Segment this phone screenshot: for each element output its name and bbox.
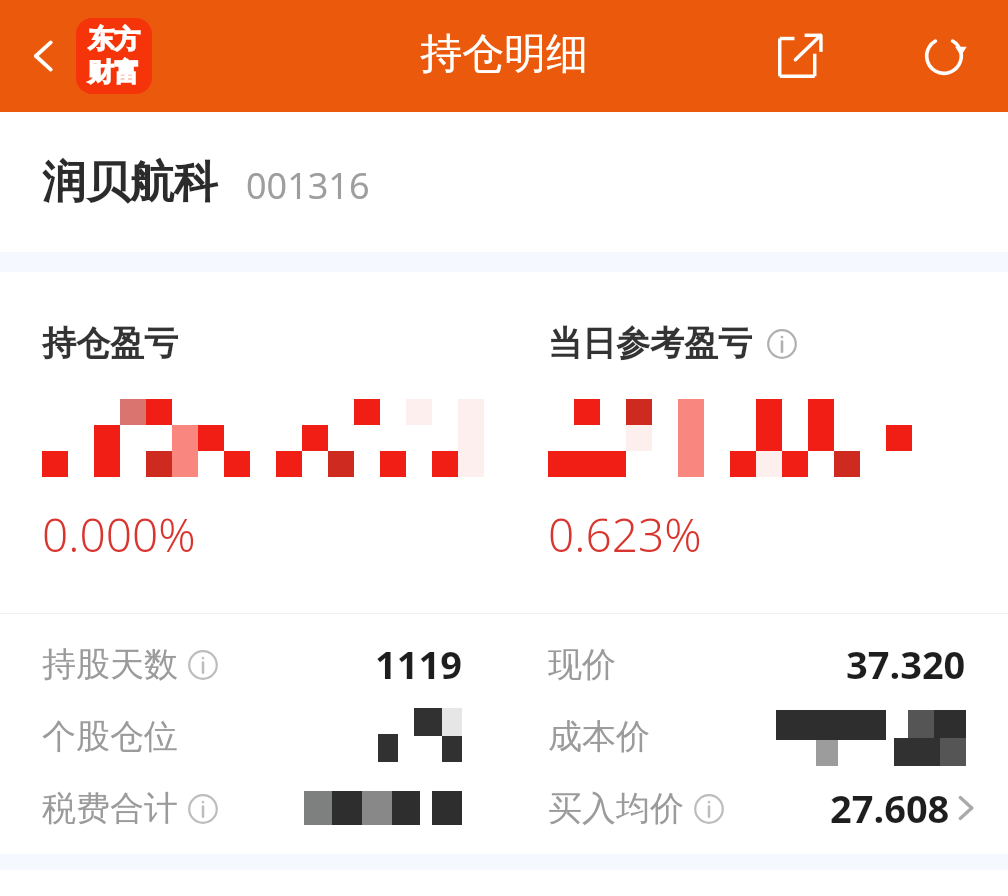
staticText: 001316: [246, 161, 370, 210]
staticText: 现价: [548, 643, 616, 686]
staticText: 财富: [88, 56, 140, 89]
button[interactable]: 润贝航科: [0, 112, 1008, 252]
staticText: 当日参考盈亏: [548, 322, 752, 365]
button[interactable]: 个股仓位: [0, 700, 1008, 772]
staticText: 持股天数: [42, 643, 178, 686]
staticText: 1119: [375, 638, 462, 690]
staticText: 成本价: [548, 715, 650, 758]
staticText: 税费合计: [42, 787, 178, 830]
staticText: 买入均价: [548, 787, 684, 830]
staticText: 持仓盈亏: [42, 322, 178, 365]
staticText: 0.623%: [548, 503, 702, 566]
staticText: 37.320: [846, 638, 966, 690]
staticText: 持仓明细: [420, 28, 588, 81]
button[interactable]: Share: [762, 18, 838, 94]
button[interactable]: Refresh: [906, 18, 982, 94]
button[interactable]: Back: [14, 26, 74, 86]
button[interactable]: Info about today's reference profit: [764, 326, 800, 362]
staticText: 东方: [88, 23, 140, 56]
staticText: 0.000%: [42, 503, 196, 566]
staticText: 润贝航科: [42, 155, 218, 210]
staticText: 个股仓位: [42, 715, 178, 758]
staticText: 27.608: [830, 782, 950, 834]
button[interactable]: 持股天数: [0, 628, 1008, 700]
button[interactable]: 税费合计: [0, 772, 1008, 844]
button[interactable]: East Money logo: [76, 18, 152, 94]
